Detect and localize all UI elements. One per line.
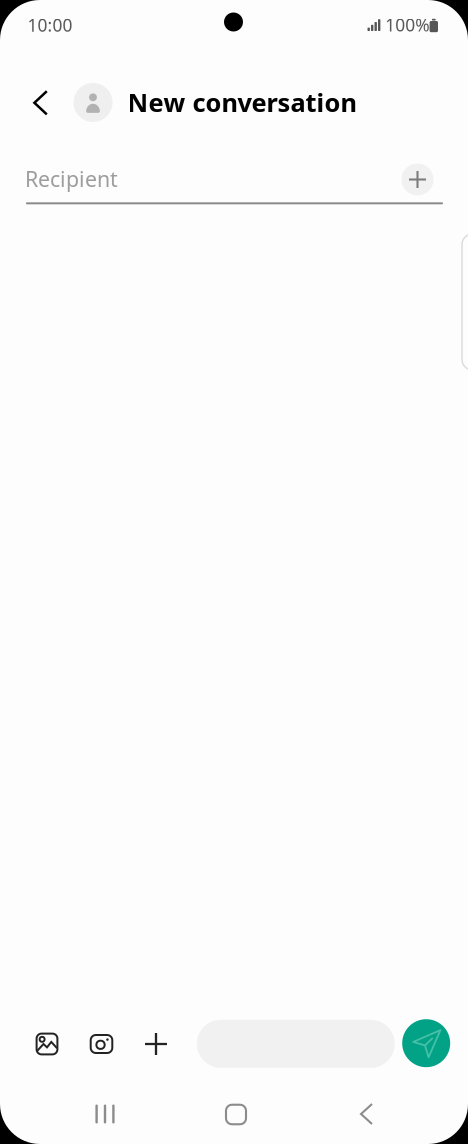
button[interactable]: Camera bbox=[79, 1020, 123, 1068]
button[interactable]: Back bbox=[19, 79, 63, 127]
button[interactable]: Send bbox=[402, 1019, 450, 1067]
staticText: 100% bbox=[385, 13, 429, 36]
staticText: Recipient bbox=[25, 164, 118, 193]
button[interactable]: More options bbox=[134, 1020, 178, 1068]
staticText: 10:00 bbox=[27, 13, 72, 36]
button[interactable]: Recent apps bbox=[50, 1090, 160, 1138]
button[interactable]: Gallery bbox=[25, 1020, 69, 1068]
button[interactable]: Home bbox=[181, 1090, 291, 1138]
button[interactable]: Add recipient bbox=[397, 159, 437, 199]
button[interactable]: Back bbox=[311, 1090, 421, 1138]
button[interactable]: Recipient profile bbox=[71, 80, 115, 124]
staticText: New conversation bbox=[127, 85, 356, 119]
